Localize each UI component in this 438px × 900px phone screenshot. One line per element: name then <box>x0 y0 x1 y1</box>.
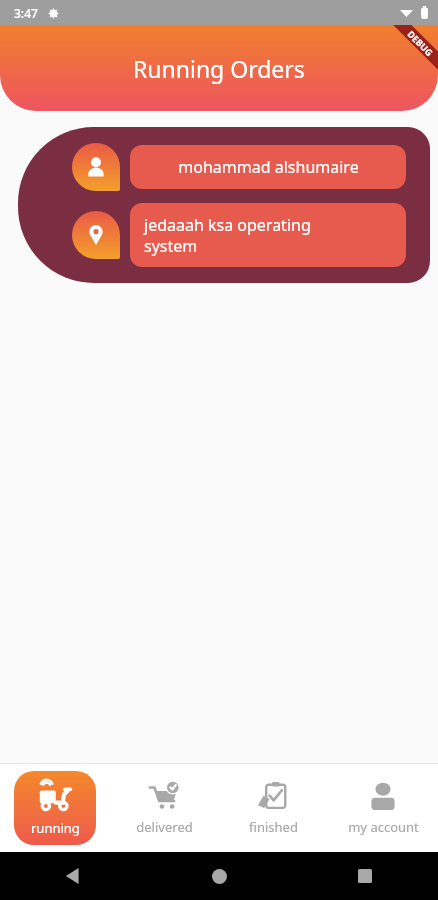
staticText: DEBUG <box>405 28 436 58</box>
staticText: jedaaah ksa operating system <box>144 214 311 257</box>
button[interactable]: mohammad alshumaire <box>130 145 406 189</box>
staticText: 3:47 <box>14 5 38 21</box>
staticText: finished <box>249 818 298 836</box>
button[interactable]: Recent apps <box>351 862 379 890</box>
staticText: running <box>31 819 80 837</box>
button[interactable]: mohammad alshumaire <box>18 127 430 283</box>
button[interactable]: running <box>14 771 96 845</box>
button[interactable]: Back <box>59 862 87 890</box>
button[interactable]: finished <box>227 774 319 842</box>
staticText: Running Orders <box>133 53 305 84</box>
button[interactable]: my account <box>337 774 429 842</box>
staticText: mohammad alshumaire <box>178 156 359 178</box>
staticText: my account <box>348 818 419 836</box>
button[interactable]: delivered <box>118 774 210 842</box>
button[interactable]: Home <box>205 862 233 890</box>
staticText: delivered <box>136 818 193 836</box>
button[interactable]: jedaaah ksa operating system <box>130 203 406 267</box>
